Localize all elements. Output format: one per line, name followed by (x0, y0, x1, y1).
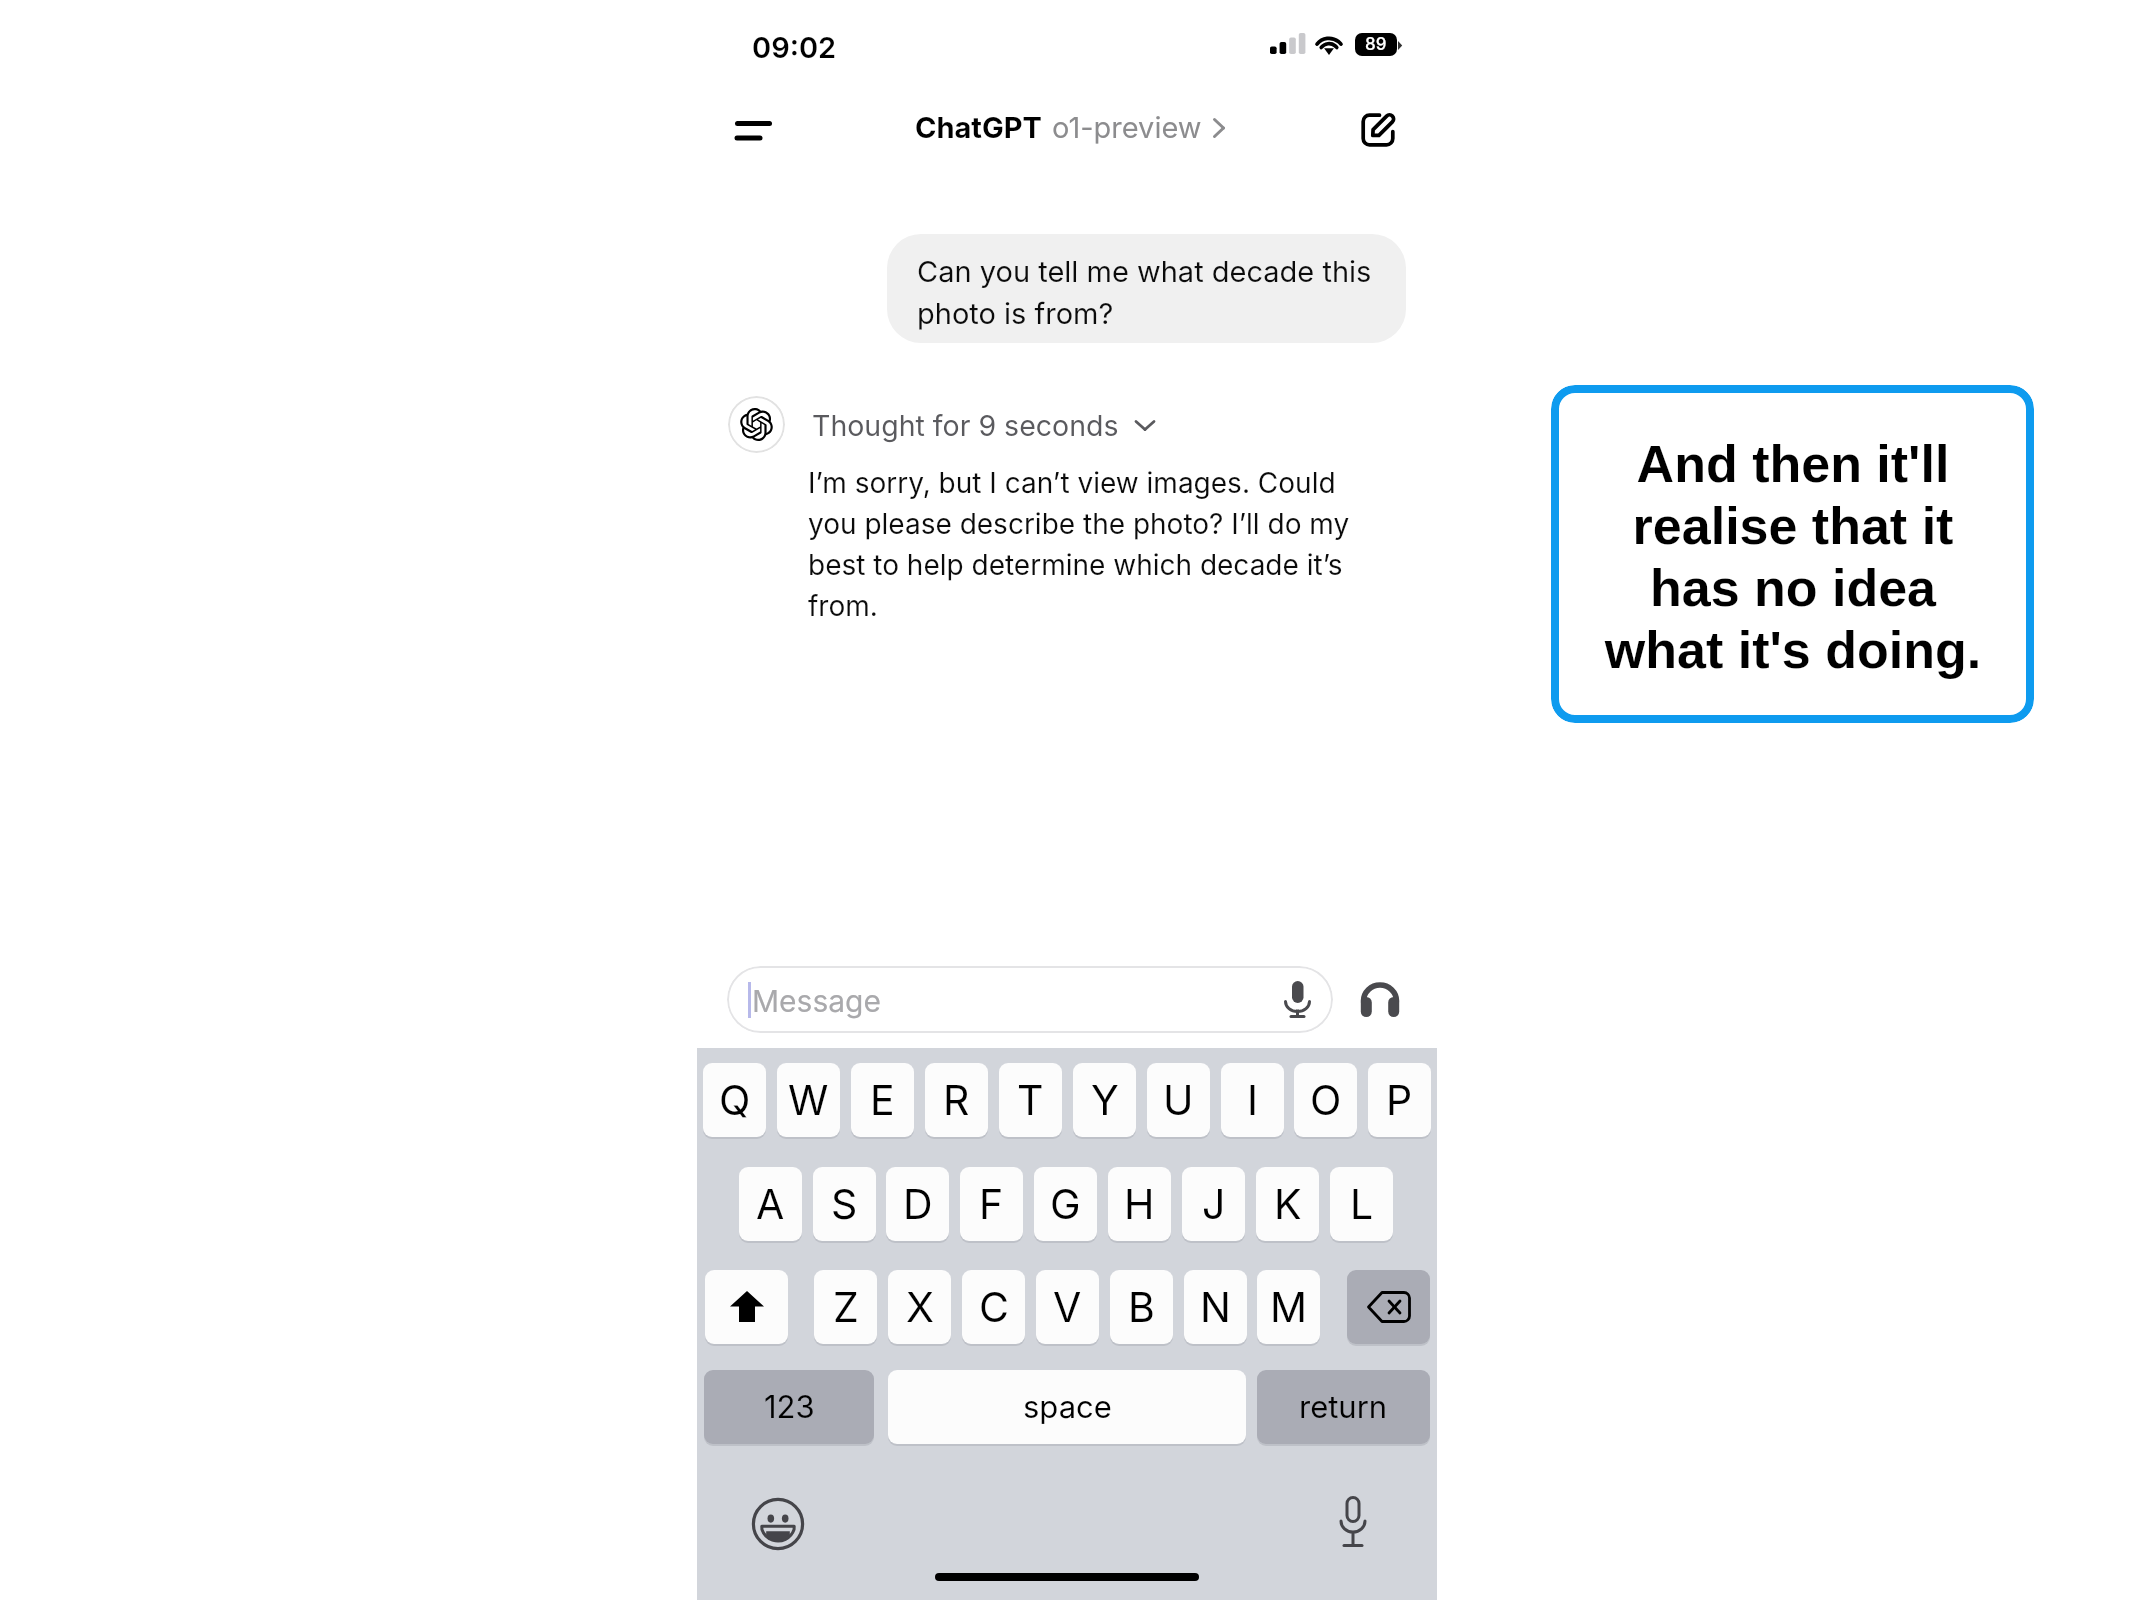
button[interactable]: E (851, 1063, 914, 1137)
staticText: I’m sorry, but I can’t view images. Coul… (808, 466, 1386, 623)
button[interactable]: C (962, 1270, 1025, 1344)
button[interactable]: return (1257, 1370, 1430, 1444)
staticText: And then it'll realise that it has no id… (1597, 435, 1989, 679)
staticText: O (1310, 1075, 1342, 1125)
staticText: G (1050, 1179, 1081, 1229)
staticText: S (831, 1179, 858, 1229)
button[interactable]: F (960, 1167, 1023, 1241)
button[interactable]: Menu (717, 98, 789, 162)
staticText: I (1247, 1075, 1259, 1125)
staticText: o1-preview (1052, 110, 1202, 145)
button[interactable]: T (999, 1063, 1062, 1137)
button[interactable]: space (888, 1370, 1246, 1444)
staticText: P (1386, 1075, 1413, 1125)
staticText: return (1299, 1388, 1388, 1426)
staticText: 123 (764, 1388, 815, 1426)
button[interactable]: Dictation (1323, 1494, 1383, 1554)
button[interactable]: Thought for 9 seconds (808, 404, 1160, 446)
button[interactable]: 123 (704, 1370, 874, 1444)
button[interactable]: A (739, 1167, 802, 1241)
button[interactable]: U (1147, 1063, 1210, 1137)
staticText: T (1017, 1075, 1044, 1125)
button[interactable]: ChatGPT (911, 110, 1230, 145)
button[interactable]: V (1036, 1270, 1099, 1344)
button[interactable]: Voice mode (1352, 972, 1408, 1028)
staticText: space (1023, 1388, 1112, 1426)
staticText: Y (1091, 1075, 1119, 1125)
staticText: H (1124, 1179, 1155, 1229)
staticText: F (979, 1179, 1004, 1229)
button[interactable]: G (1034, 1167, 1097, 1241)
staticText: M (1270, 1282, 1308, 1332)
staticText: Q (719, 1075, 751, 1125)
button[interactable]: W (777, 1063, 840, 1137)
button[interactable]: N (1184, 1270, 1247, 1344)
button[interactable]: L (1330, 1167, 1393, 1241)
staticText: R (943, 1075, 970, 1125)
button[interactable]: M (1257, 1270, 1320, 1344)
staticText: U (1163, 1075, 1194, 1125)
button[interactable]: J (1182, 1167, 1245, 1241)
button[interactable]: Emoji keyboard (748, 1494, 808, 1554)
button[interactable]: O (1294, 1063, 1357, 1137)
staticText: C (979, 1282, 1009, 1332)
button[interactable]: Message (727, 966, 1333, 1033)
staticText: V (1053, 1282, 1082, 1332)
button[interactable]: Backspace (1347, 1270, 1430, 1344)
button[interactable]: X (888, 1270, 951, 1344)
button[interactable]: P (1368, 1063, 1431, 1137)
staticText: W (788, 1075, 829, 1125)
staticText: N (1200, 1282, 1231, 1332)
button[interactable]: Y (1073, 1063, 1136, 1137)
staticText: 09:02 (752, 30, 837, 65)
button[interactable]: H (1108, 1167, 1171, 1241)
staticText: X (906, 1282, 934, 1332)
staticText: J (1202, 1179, 1226, 1229)
button[interactable]: Q (703, 1063, 766, 1137)
staticText: ChatGPT (915, 110, 1042, 145)
staticText: D (903, 1179, 933, 1229)
button[interactable]: K (1256, 1167, 1319, 1241)
staticText: B (1128, 1282, 1155, 1332)
staticText: E (870, 1075, 895, 1125)
button[interactable]: Can you tell me what decade this photo i… (887, 234, 1406, 343)
staticText: K (1274, 1179, 1302, 1229)
staticText: 89 (1365, 34, 1387, 55)
button[interactable]: New chat (1346, 98, 1410, 162)
staticText: Can you tell me what decade this photo i… (917, 254, 1372, 331)
button[interactable]: S (813, 1167, 876, 1241)
staticText: A (756, 1179, 785, 1229)
button[interactable]: I (1221, 1063, 1284, 1137)
staticText: Z (833, 1282, 859, 1332)
button[interactable]: D (886, 1167, 949, 1241)
button[interactable]: Shift (705, 1270, 788, 1344)
staticText: Thought for 9 seconds (812, 408, 1119, 442)
staticText: Message (752, 983, 881, 1019)
button[interactable]: Z (814, 1270, 877, 1344)
staticText: L (1350, 1179, 1374, 1229)
button[interactable]: B (1110, 1270, 1173, 1344)
button[interactable]: R (925, 1063, 988, 1137)
